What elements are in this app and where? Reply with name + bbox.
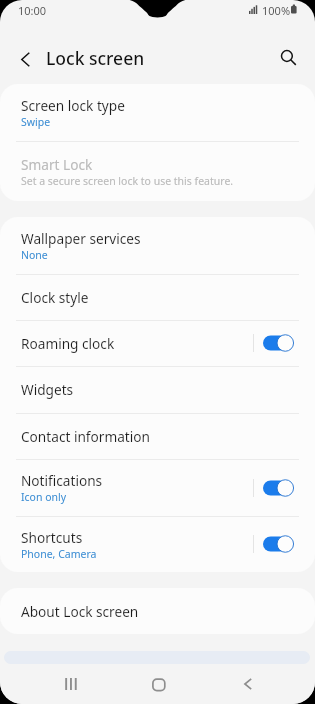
- button[interactable]: Notifications: [0, 459, 315, 516]
- button[interactable]: Back: [225, 664, 270, 704]
- staticText: Roaming clock: [21, 334, 115, 353]
- staticText: Phone, Camera: [21, 547, 97, 561]
- staticText: Swipe: [21, 115, 51, 129]
- button[interactable]: Toggle: [263, 334, 294, 352]
- button[interactable]: Widgets: [0, 366, 315, 413]
- staticText: Set a secure screen lock to use this fea…: [21, 174, 234, 188]
- staticText: Screen lock type: [21, 96, 125, 115]
- staticText: Notifications: [21, 471, 103, 490]
- staticText: Shortcuts: [21, 528, 83, 547]
- staticText: Icon only: [21, 490, 67, 504]
- staticText: Clock style: [21, 288, 89, 307]
- staticText: Lock screen: [46, 46, 145, 70]
- button[interactable]: Wallpaper services: [0, 217, 315, 274]
- staticText: 100%: [262, 3, 291, 18]
- staticText: About Lock screen: [21, 602, 139, 621]
- button[interactable]: Clock style: [0, 274, 315, 320]
- button[interactable]: Screen lock type: [0, 84, 315, 141]
- button[interactable]: Toggle: [263, 535, 294, 553]
- staticText: Contact information: [21, 427, 150, 446]
- button[interactable]: Navigate up: [3, 37, 47, 81]
- button[interactable]: Home: [136, 664, 181, 704]
- staticText: 10:00: [18, 3, 47, 18]
- button[interactable]: Contact information: [0, 413, 315, 459]
- staticText: None: [21, 248, 48, 262]
- staticText: Widgets: [21, 380, 74, 399]
- button[interactable]: About Lock screen: [0, 588, 315, 634]
- button[interactable]: Roaming clock: [0, 320, 315, 366]
- button[interactable]: Shortcuts: [0, 516, 315, 572]
- button[interactable]: Toggle: [263, 479, 294, 497]
- staticText: Wallpaper services: [21, 229, 141, 248]
- button[interactable]: Smart Lock: [0, 141, 315, 201]
- button[interactable]: Recent apps: [48, 664, 93, 704]
- staticText: Smart Lock: [21, 155, 93, 174]
- button[interactable]: Search: [267, 37, 311, 81]
